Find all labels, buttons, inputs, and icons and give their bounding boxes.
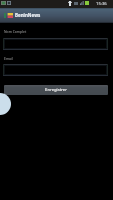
other: Messages <box>7 1 11 5</box>
staticText: 15:36 <box>96 1 107 7</box>
button[interactable] <box>3 64 108 76</box>
staticText: Nom Complet <box>4 29 27 34</box>
other: Notification <box>1 1 6 5</box>
button[interactable]: BeninNews <box>0 8 113 23</box>
button[interactable] <box>3 38 108 50</box>
staticText: Enregistrer <box>45 87 67 93</box>
staticText: Email <box>4 56 13 61</box>
staticText: BeninNews <box>15 12 41 18</box>
button[interactable]: Enregistrer <box>4 85 108 95</box>
